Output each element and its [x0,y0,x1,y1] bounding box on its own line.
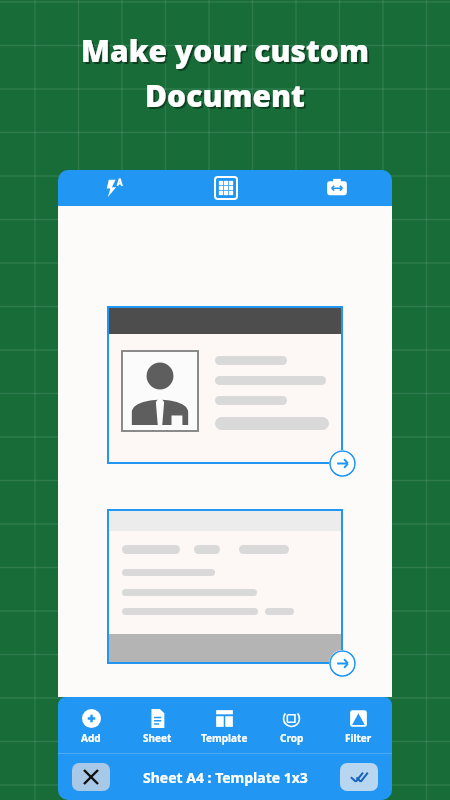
staticText: Crop [280,731,304,745]
button[interactable]: Sheet [124,701,191,753]
button[interactable]: Next [329,650,356,677]
button[interactable]: Cancel [72,763,110,791]
button[interactable]: Template [191,701,258,753]
button[interactable] [107,306,343,464]
button[interactable]: Add [58,701,124,753]
button[interactable]: Filter [325,701,392,753]
staticText: Sheet A4 : Template 1x3 [143,768,308,787]
staticText: Document [145,75,305,116]
staticText: Make your custom [83,32,371,73]
staticText: Sheet [143,731,172,745]
button[interactable]: Done [340,763,378,791]
button[interactable]: Grid [215,177,237,199]
button[interactable]: Flash auto [101,175,127,201]
button[interactable] [107,509,343,664]
button[interactable]: Next [329,450,356,477]
staticText: Filter [345,731,372,745]
button[interactable]: Crop [258,701,325,753]
staticText: Add [81,731,101,745]
button[interactable]: Switch camera [325,176,349,200]
staticText: Document [147,77,307,118]
staticText: Make your custom [81,30,369,71]
staticText: Template [201,731,248,745]
